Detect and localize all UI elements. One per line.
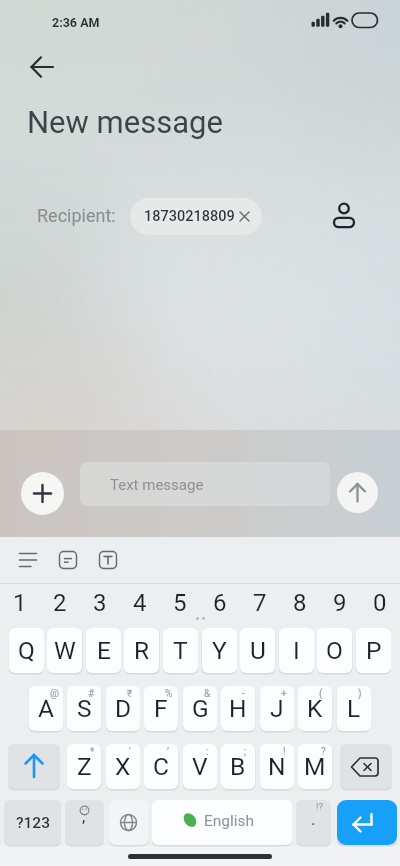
staticText: Text message	[110, 476, 204, 494]
button[interactable]	[24, 51, 60, 87]
staticText: Y	[212, 636, 227, 665]
button[interactable]: ?123	[4, 800, 61, 845]
staticText: #	[88, 688, 95, 700]
staticText: *	[90, 746, 95, 758]
button[interactable]: 18730218809	[130, 198, 262, 235]
button[interactable]: P	[356, 628, 391, 673]
staticText: L	[347, 694, 361, 723]
button[interactable]: U	[240, 628, 275, 673]
staticText: @	[50, 688, 59, 700]
button[interactable]: X	[106, 744, 140, 789]
staticText: X	[115, 752, 131, 781]
button[interactable]	[326, 198, 363, 235]
button[interactable]	[337, 472, 378, 513]
button[interactable]: R	[124, 628, 159, 673]
button[interactable]	[94, 546, 122, 574]
button[interactable]: 8	[280, 589, 320, 615]
staticText: &	[204, 688, 211, 700]
staticText: '	[129, 746, 131, 758]
staticText: 3	[93, 589, 107, 615]
button[interactable]: B	[221, 744, 255, 789]
staticText: (	[319, 688, 323, 700]
staticText: J	[270, 694, 284, 723]
staticText: 5	[173, 589, 187, 615]
button[interactable]	[152, 800, 292, 845]
staticText: ?	[321, 746, 326, 758]
button[interactable]: N	[260, 744, 294, 789]
staticText: )	[358, 688, 362, 700]
staticText: 8	[293, 589, 307, 615]
button[interactable]: L	[337, 686, 371, 731]
staticText: :	[206, 746, 209, 758]
staticText: English	[204, 812, 255, 830]
staticText: 4	[133, 589, 147, 615]
staticText: A	[38, 694, 54, 723]
button[interactable]	[337, 800, 397, 845]
button[interactable]	[65, 800, 104, 845]
button[interactable]: O	[317, 628, 352, 673]
button[interactable]: 7	[240, 589, 280, 615]
button[interactable]	[340, 744, 392, 789]
button[interactable]: D	[106, 686, 140, 731]
button[interactable]	[54, 546, 82, 574]
button[interactable]: 9	[320, 589, 360, 615]
staticText: ₹	[127, 688, 133, 700]
button[interactable]: E	[86, 628, 121, 673]
button[interactable]: V	[183, 744, 217, 789]
button[interactable]: Y	[202, 628, 237, 673]
staticText: P	[366, 636, 382, 665]
staticText: %	[165, 688, 173, 700]
staticText: T	[173, 636, 188, 665]
button[interactable]: G	[183, 686, 217, 731]
staticText: W	[54, 636, 76, 665]
staticText: 2	[53, 589, 67, 615]
staticText: Recipient:	[37, 205, 116, 226]
button[interactable]	[14, 546, 42, 574]
button[interactable]: K	[298, 686, 332, 731]
button[interactable]: S	[67, 686, 101, 731]
button[interactable]: 3	[80, 589, 120, 615]
button[interactable]: 2	[40, 589, 80, 615]
button[interactable]: 6	[200, 589, 240, 615]
button[interactable]: M	[298, 744, 332, 789]
button[interactable]: I	[279, 628, 314, 673]
staticText: S	[77, 694, 92, 723]
staticText: 7	[253, 589, 267, 615]
button[interactable]: Z	[67, 744, 101, 789]
button[interactable]: Q	[9, 628, 44, 673]
staticText: +	[281, 688, 287, 700]
staticText: N	[268, 752, 286, 781]
staticText: 9	[333, 589, 347, 615]
button[interactable]: F	[144, 686, 178, 731]
staticText: V	[192, 752, 208, 781]
staticText: B	[230, 752, 246, 781]
staticText: ’	[167, 746, 170, 758]
button[interactable]	[109, 800, 148, 845]
staticText: !?	[316, 801, 323, 812]
button[interactable]: H	[221, 686, 255, 731]
staticText: 0	[373, 589, 387, 615]
staticText: I	[293, 636, 300, 665]
button[interactable]: J	[260, 686, 294, 731]
staticText: 2:36 AM	[52, 15, 100, 30]
button[interactable]: Text message	[80, 462, 330, 506]
button[interactable]	[8, 744, 60, 789]
button[interactable]: 0	[360, 589, 400, 615]
staticText: .	[311, 809, 316, 829]
button[interactable]	[21, 472, 64, 515]
button[interactable]: A	[29, 686, 63, 731]
button[interactable]: 1	[0, 589, 40, 615]
staticText: Q	[18, 636, 35, 665]
button[interactable]: T	[163, 628, 198, 673]
staticText: New message	[27, 104, 223, 140]
button[interactable]: C	[144, 744, 178, 789]
staticText: !	[283, 746, 286, 758]
button[interactable]: W	[47, 628, 82, 673]
staticText: G	[192, 694, 209, 723]
staticText: ;	[244, 746, 247, 758]
staticText: H	[229, 694, 247, 723]
staticText: F	[154, 694, 168, 723]
button[interactable]	[296, 800, 331, 845]
button[interactable]: 4	[120, 589, 160, 615]
button[interactable]: 5	[160, 589, 200, 615]
